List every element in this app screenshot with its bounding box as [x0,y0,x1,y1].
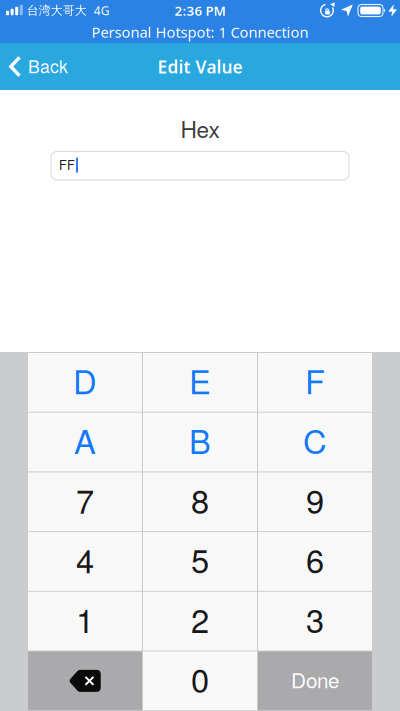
staticText: 台湾大哥大 [27,3,87,18]
staticText: Done [291,665,339,694]
staticText: 3 [306,596,324,642]
staticText: 0 [191,655,209,702]
staticText: B [189,416,211,463]
staticText: 4 [76,536,94,583]
staticText: D [73,357,97,404]
staticText: F [305,357,325,404]
staticText: A [74,416,96,463]
button[interactable]: F [258,353,372,412]
button[interactable]: C [258,413,372,471]
button[interactable]: 8 [143,472,257,531]
staticText: 9 [306,476,324,523]
staticText: 4G [94,2,110,18]
button[interactable]: 4 [28,532,142,591]
button[interactable]: 6 [258,532,372,591]
button[interactable]: 2 [143,592,257,650]
button[interactable]: B [143,413,257,471]
staticText: C [303,416,327,463]
button[interactable]: E [143,353,257,412]
staticText: 6 [306,536,324,583]
staticText: 2 [191,596,209,642]
staticText: 8 [191,476,209,523]
button[interactable]: Hex value field [51,151,349,180]
button[interactable]: 9 [258,472,372,531]
staticText: 7 [76,476,94,523]
button[interactable]: A [28,413,142,471]
staticText: Personal Hotspot: 1 Connection [91,22,308,42]
button[interactable]: 7 [28,472,142,531]
staticText: 5 [191,536,209,583]
button[interactable]: Delete [28,651,142,710]
staticText: 2:36 PM [174,2,225,19]
button[interactable]: 3 [258,592,372,650]
button[interactable]: 5 [143,532,257,591]
staticText: 1 [76,596,94,642]
staticText: Edit Value [157,55,242,78]
staticText: FF [59,155,75,173]
button[interactable]: 1 [28,592,142,650]
button[interactable]: Done [258,651,372,710]
staticText: Hex [180,112,219,144]
button[interactable]: 0 [143,651,257,710]
staticText: E [189,357,211,404]
staticText: Back [28,53,68,78]
button[interactable]: D [28,353,142,412]
button[interactable]: Back [0,46,68,87]
